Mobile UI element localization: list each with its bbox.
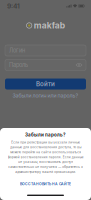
button[interactable]: Логин [5,45,86,56]
staticText: Войти [36,80,55,88]
staticText: Забыли логин или пароль? [12,92,78,99]
staticText: 9:41 [7,2,20,10]
staticText: makfab [34,20,65,31]
staticText: Логин [9,47,25,54]
button[interactable]: Войти [5,78,86,89]
button[interactable]: Пароль [5,59,86,70]
staticText: Пароль [9,62,28,68]
staticText: Забыли пароль? [25,132,66,137]
staticText: Если при регистрации вы указали личные д… [7,140,83,174]
staticText: ВОССТАНОВИТЬ НА САЙТЕ [20,182,71,186]
button[interactable]: ВОССТАНОВИТЬ НА САЙТЕ [0,180,91,189]
button[interactable]: Забыли логин или пароль? [0,91,91,99]
